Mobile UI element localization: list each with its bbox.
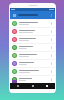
button[interactable]: Row options: [50, 77, 53, 82]
button[interactable]: App badge: [12, 80, 17, 85]
button[interactable]: Row options: [50, 37, 53, 42]
button[interactable]: Row options: [50, 21, 53, 26]
button[interactable]: Menu: [10, 11, 55, 19]
button[interactable]: Row options: [50, 29, 53, 34]
button[interactable]: Row options: [50, 45, 53, 50]
button[interactable]: Recents: [41, 83, 53, 89]
button[interactable]: Row options: [10, 20, 55, 27]
button[interactable]: Row options: [10, 36, 55, 43]
button[interactable]: Row options: [10, 68, 55, 75]
button[interactable]: Row options: [50, 53, 53, 58]
button[interactable]: Row options: [10, 28, 55, 35]
button[interactable]: Row options: [10, 44, 55, 51]
button[interactable]: Menu: [12, 13, 17, 18]
button[interactable]: Row options: [10, 76, 55, 83]
button[interactable]: More options: [49, 13, 53, 17]
button[interactable]: Home: [27, 83, 39, 89]
button[interactable]: Row options: [50, 69, 53, 74]
button[interactable]: Row options: [10, 60, 55, 67]
button[interactable]: Back: [12, 83, 24, 89]
button[interactable]: Row options: [10, 52, 55, 59]
button[interactable]: Row options: [50, 61, 53, 66]
